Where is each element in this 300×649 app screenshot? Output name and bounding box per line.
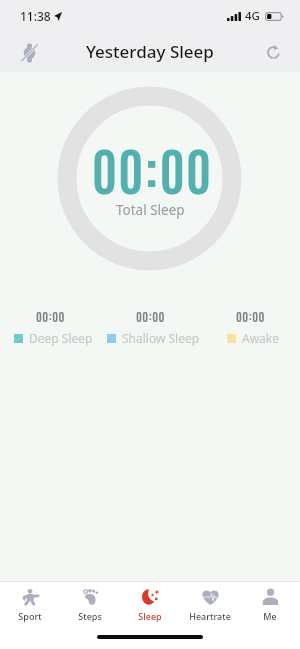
- staticText: Yesterday Sleep: [86, 40, 214, 63]
- button[interactable]: Heartrate: [180, 582, 240, 622]
- staticText: Total Sleep: [116, 201, 185, 219]
- staticText: 4G: [245, 8, 260, 24]
- staticText: Shallow Sleep: [122, 330, 200, 346]
- staticText: 00:00: [136, 308, 165, 324]
- staticText: Heartrate: [189, 610, 231, 622]
- staticText: 00:00: [236, 308, 265, 324]
- button[interactable]: Refresh: [255, 34, 291, 70]
- staticText: Sleep: [138, 610, 162, 622]
- button[interactable]: Steps: [60, 582, 120, 622]
- button[interactable]: Device disconnected: [11, 35, 47, 71]
- button[interactable]: Sport: [0, 582, 60, 622]
- staticText: 11:38: [20, 8, 51, 24]
- staticText: Steps: [78, 610, 102, 622]
- staticText: Sport: [18, 610, 42, 622]
- button[interactable]: Sleep: [120, 582, 180, 622]
- staticText: 00:00: [92, 135, 213, 201]
- staticText: Awake: [242, 330, 280, 346]
- button[interactable]: Me: [240, 582, 300, 622]
- staticText: Deep Sleep: [29, 330, 93, 346]
- staticText: Me: [263, 610, 277, 622]
- staticText: 00:00: [36, 308, 65, 324]
